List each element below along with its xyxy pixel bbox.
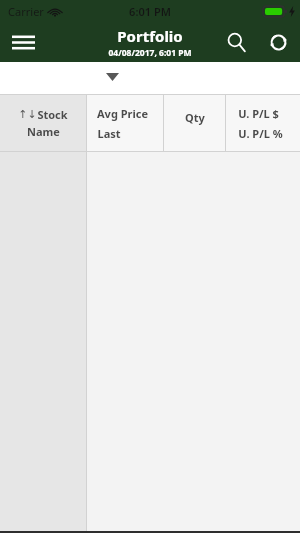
button[interactable]: Menu xyxy=(0,22,46,62)
button[interactable]: U. P/L $ xyxy=(226,94,300,152)
staticText: Name xyxy=(27,124,60,139)
staticText: ↑↓ xyxy=(18,108,37,121)
staticText: Qty xyxy=(185,110,205,125)
staticText: U. P/L % xyxy=(238,126,283,141)
button[interactable]: Refresh xyxy=(256,22,300,62)
button[interactable]: Qty xyxy=(164,94,225,152)
button[interactable]: Avg Price xyxy=(87,94,163,152)
button[interactable]: ↑↓ xyxy=(0,94,86,152)
staticText: U. P/L $ xyxy=(238,106,279,121)
button[interactable]: Expand xyxy=(98,67,127,87)
staticText: Carrier xyxy=(8,4,44,19)
staticText: Stock xyxy=(37,107,68,122)
staticText: 04/08/2017, 6:01 PM xyxy=(108,47,192,59)
button[interactable]: Search xyxy=(216,22,256,62)
staticText: Last xyxy=(97,126,121,141)
staticText: Portfolio xyxy=(117,26,183,46)
staticText: 6:01 PM xyxy=(129,4,171,19)
staticText: Avg Price xyxy=(97,106,148,121)
